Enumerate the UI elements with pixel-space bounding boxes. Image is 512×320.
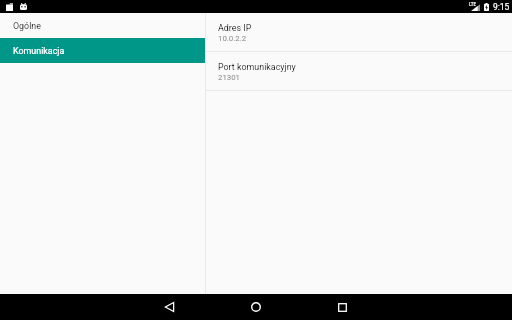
button[interactable]: Back bbox=[158, 294, 181, 320]
button[interactable]: Recents bbox=[331, 294, 354, 320]
button[interactable]: Komunikacja bbox=[0, 38, 205, 63]
staticText: Port komunikacyjny bbox=[218, 62, 296, 72]
button[interactable]: Ogólne bbox=[0, 13, 205, 38]
staticText: LTE bbox=[469, 2, 477, 7]
button[interactable]: Port komunikacyjny bbox=[206, 52, 512, 91]
staticText: 9:15 bbox=[493, 2, 510, 12]
staticText: Komunikacja bbox=[13, 46, 65, 56]
staticText: 21301 bbox=[218, 73, 240, 82]
staticText: 10.0.2.2 bbox=[218, 34, 247, 43]
button[interactable]: Home bbox=[244, 294, 267, 320]
staticText: Ogólne bbox=[13, 21, 41, 31]
staticText: Adres IP bbox=[218, 23, 252, 33]
button[interactable]: Adres IP bbox=[206, 13, 512, 52]
